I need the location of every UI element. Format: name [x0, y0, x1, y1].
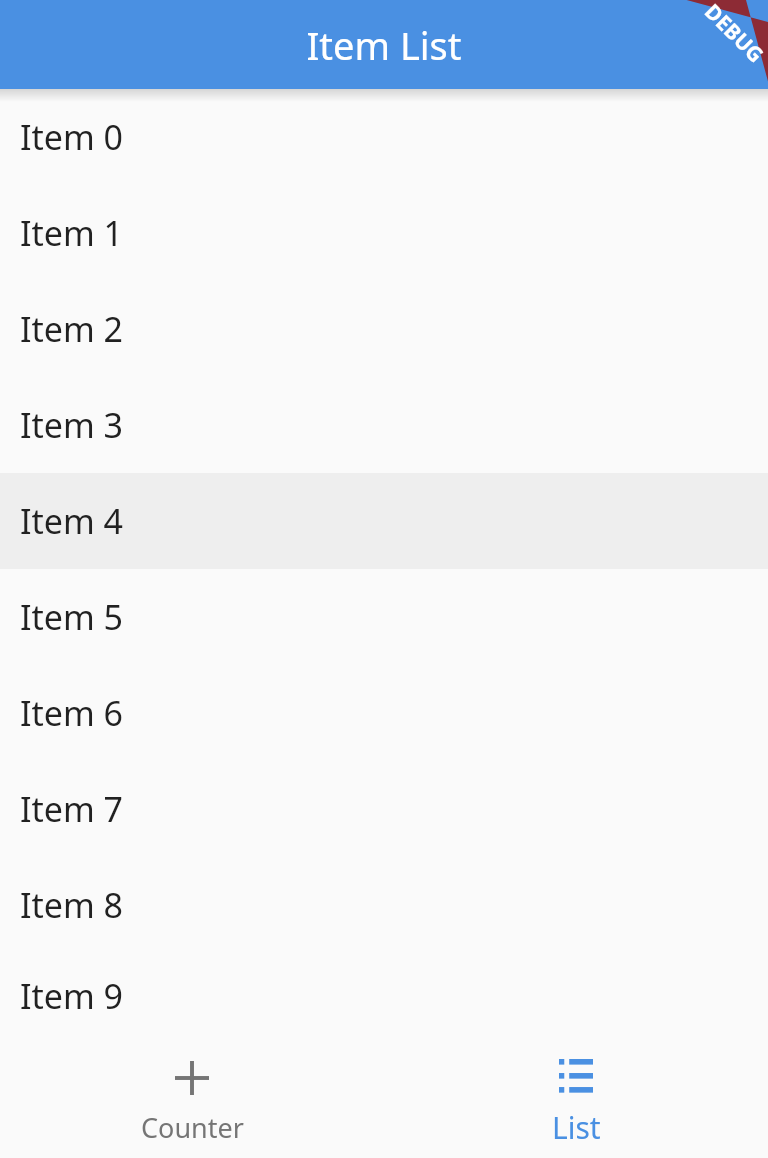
- staticText: Counter: [141, 1109, 244, 1146]
- staticText: Item 5: [20, 594, 124, 640]
- staticText: Item List: [306, 19, 462, 71]
- button[interactable]: Item 4: [0, 473, 768, 569]
- button[interactable]: Item 3: [0, 377, 768, 473]
- button[interactable]: Counter: [0, 1039, 384, 1158]
- staticText: Item 7: [20, 786, 124, 832]
- staticText: List: [552, 1107, 601, 1148]
- staticText: Item 3: [20, 402, 124, 448]
- other: Counter: [175, 1061, 209, 1095]
- button[interactable]: Item 8: [0, 857, 768, 953]
- button[interactable]: Item 1: [0, 185, 768, 281]
- staticText: Item 8: [20, 882, 124, 928]
- staticText: Item 1: [20, 210, 124, 256]
- other: List: [559, 1059, 593, 1093]
- staticText: Item 2: [20, 306, 124, 352]
- button[interactable]: Item 5: [0, 569, 768, 665]
- staticText: Item 0: [20, 114, 124, 160]
- button[interactable]: Item 2: [0, 281, 768, 377]
- button[interactable]: Item 7: [0, 761, 768, 857]
- button[interactable]: Item 9: [0, 953, 768, 1039]
- button[interactable]: List: [384, 1039, 768, 1158]
- button[interactable]: Item 0: [0, 89, 768, 185]
- staticText: Item 9: [20, 973, 124, 1019]
- staticText: Item 4: [20, 498, 124, 544]
- staticText: Item 6: [20, 690, 124, 736]
- button[interactable]: Item 6: [0, 665, 768, 761]
